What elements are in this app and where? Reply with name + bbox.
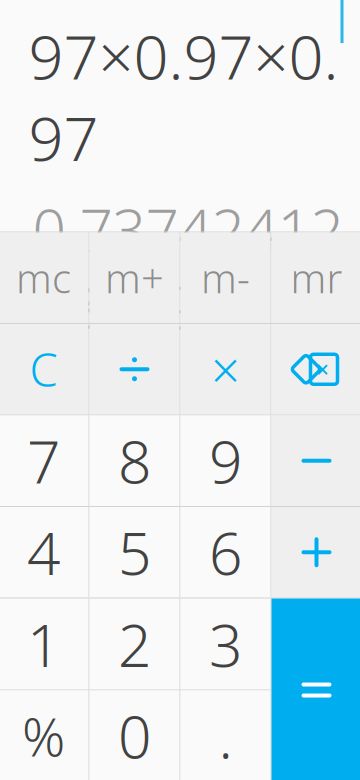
button[interactable]: Equals	[271, 598, 360, 780]
staticText: 4	[27, 513, 60, 591]
button[interactable]: mc	[0, 232, 88, 323]
button[interactable]: 9	[180, 415, 270, 506]
button[interactable]: 2	[89, 599, 179, 689]
button[interactable]: .	[180, 690, 270, 780]
button[interactable]: Backspace	[271, 324, 360, 414]
button[interactable]: 6	[180, 507, 270, 597]
staticText: mr	[290, 251, 342, 304]
button[interactable]: 3	[180, 599, 270, 689]
button[interactable]: 7	[0, 415, 88, 506]
button[interactable]: m-	[180, 232, 270, 323]
staticText: ×	[316, 354, 329, 384]
staticText: .	[218, 697, 232, 775]
staticText: 1	[27, 605, 60, 683]
button[interactable]: 0	[89, 690, 179, 780]
button[interactable]: 8	[89, 415, 179, 506]
staticText: 0	[118, 697, 151, 775]
staticText: 3	[209, 605, 242, 683]
button[interactable]: Minus	[271, 415, 360, 506]
button[interactable]: %	[0, 690, 88, 780]
button[interactable]: C	[0, 324, 88, 414]
staticText: 8	[118, 422, 151, 500]
staticText: 5	[118, 513, 151, 591]
staticText: C	[29, 339, 57, 399]
button[interactable]: m+	[89, 232, 179, 323]
button[interactable]: mr	[271, 232, 360, 323]
button[interactable]: Divide	[89, 324, 179, 414]
button[interactable]: 1	[0, 599, 88, 689]
button[interactable]: ×	[180, 324, 270, 414]
staticText: 9	[209, 422, 242, 500]
button[interactable]: 4	[0, 507, 88, 597]
staticText: mc	[16, 251, 71, 304]
button[interactable]: Plus	[271, 507, 360, 597]
staticText: m-	[201, 251, 250, 304]
staticText: 7	[27, 422, 60, 500]
staticText: ×	[211, 336, 240, 403]
staticText: m+	[105, 251, 164, 304]
button[interactable]: 5	[89, 507, 179, 597]
staticText: 2	[118, 605, 151, 683]
staticText: 0.7374241268949	[32, 190, 343, 346]
staticText: .97×0.97×0.97×0.97×0.97	[28, 0, 338, 178]
staticText: 6	[209, 513, 242, 591]
staticText: %	[22, 700, 65, 771]
